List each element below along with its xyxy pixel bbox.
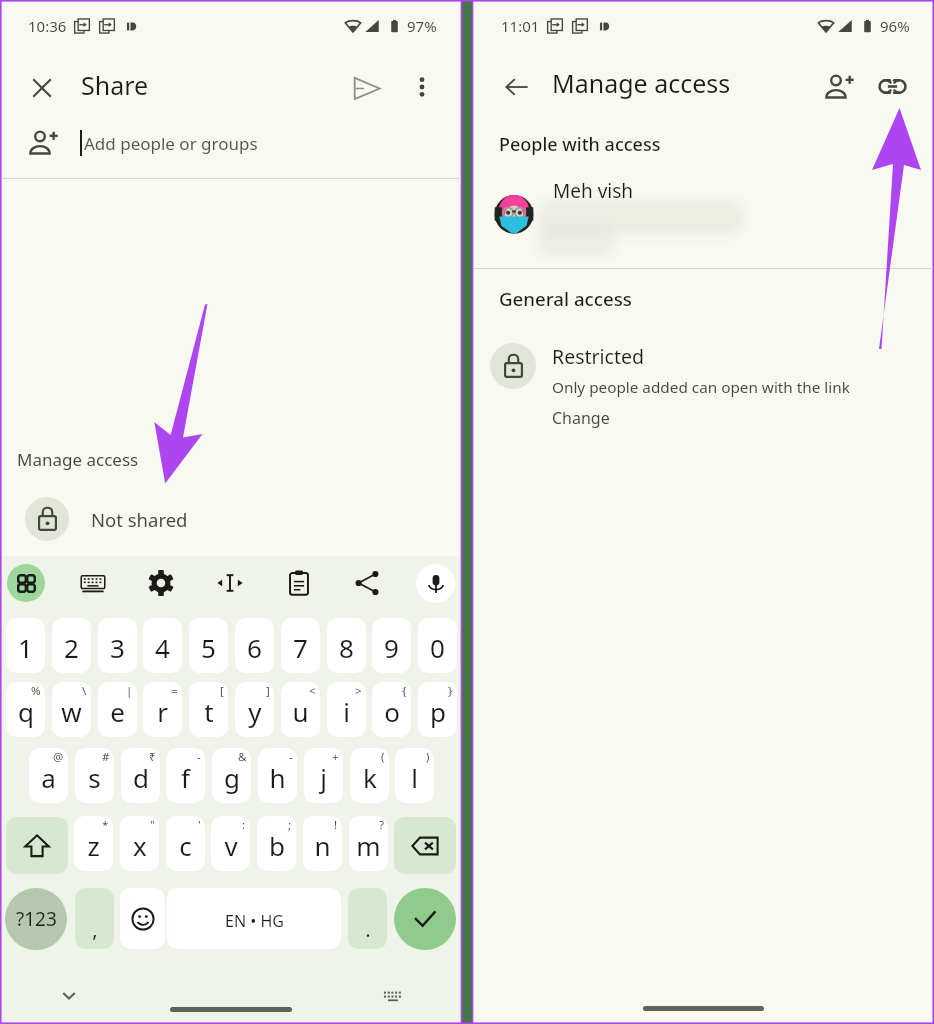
button[interactable]: 0 — [418, 618, 457, 673]
staticText: e — [110, 694, 125, 729]
staticText: o — [384, 694, 400, 729]
staticText: w — [61, 694, 82, 729]
button[interactable]: f — [166, 748, 205, 803]
button[interactable]: w — [52, 682, 91, 737]
button[interactable]: 5 — [189, 618, 228, 673]
button[interactable]: o — [372, 682, 411, 737]
staticText: p — [430, 694, 446, 729]
button[interactable]: j — [304, 748, 343, 803]
staticText: * — [102, 817, 109, 833]
button[interactable]: Text cursor — [216, 569, 244, 597]
button[interactable]: Enter — [394, 888, 456, 950]
button[interactable]: Add people or groups — [0, 115, 934, 171]
staticText: u — [292, 694, 309, 729]
button[interactable]: v — [211, 816, 250, 871]
button[interactable]: EN • HG — [167, 888, 341, 949]
staticText: @ — [53, 749, 64, 765]
button[interactable]: x — [120, 816, 159, 871]
staticText: 7 — [293, 630, 308, 665]
button[interactable]: , — [75, 888, 114, 949]
button[interactable]: 4 — [143, 618, 182, 673]
staticText: i — [343, 694, 350, 729]
button[interactable]: Restricted — [490, 343, 850, 429]
button[interactable]: p — [418, 682, 457, 737]
button[interactable]: Shift — [6, 817, 68, 874]
button[interactable]: s — [75, 748, 114, 803]
button[interactable]: Voice input — [416, 564, 455, 603]
staticText: ? — [379, 817, 384, 833]
staticText: 10:36 — [28, 16, 67, 36]
button[interactable]: Keyboard layout — [79, 569, 107, 597]
staticText: Manage access — [17, 448, 139, 471]
button[interactable]: g — [212, 748, 251, 803]
staticText: \ — [82, 683, 87, 699]
button[interactable]: y — [235, 682, 274, 737]
staticText: ; — [288, 817, 292, 833]
staticText: c — [179, 828, 192, 863]
button[interactable]: Not shared — [0, 496, 188, 542]
button[interactable]: 6 — [235, 618, 274, 673]
button[interactable]: Copy link — [879, 73, 906, 100]
button[interactable]: l — [395, 748, 434, 803]
staticText: ) — [426, 749, 430, 765]
button[interactable]: m — [349, 816, 388, 871]
button[interactable]: q — [6, 682, 45, 737]
staticText: - — [289, 749, 293, 765]
staticText: - — [197, 749, 201, 765]
button[interactable]: Settings — [147, 569, 175, 597]
button[interactable]: 1 — [6, 618, 45, 673]
staticText: 5 — [201, 630, 216, 665]
staticText: 1 — [18, 630, 33, 665]
button[interactable]: n — [303, 816, 342, 871]
staticText: 6 — [247, 630, 262, 665]
button[interactable]: d — [121, 748, 160, 803]
button[interactable]: z — [74, 816, 113, 871]
button[interactable]: Clipboard — [285, 569, 313, 597]
button[interactable]: h — [258, 748, 297, 803]
staticText: r — [157, 694, 168, 729]
button[interactable]: t — [189, 682, 228, 737]
staticText: Share — [81, 68, 149, 102]
button[interactable]: Hide keyboard — [57, 981, 81, 1005]
button[interactable]: Add people — [824, 72, 854, 102]
button[interactable]: . — [348, 888, 387, 949]
staticText: l — [411, 760, 418, 795]
staticText: . — [365, 916, 371, 943]
staticText: b — [269, 828, 285, 863]
staticText: ( — [381, 749, 385, 765]
button[interactable]: Share — [353, 569, 381, 597]
button[interactable]: 8 — [327, 618, 366, 673]
button[interactable]: r — [143, 682, 182, 737]
button[interactable]: u — [281, 682, 320, 737]
button[interactable]: ?123 — [5, 888, 67, 950]
staticText: z — [87, 828, 100, 863]
button[interactable]: Backspace — [394, 817, 456, 874]
staticText: ₹ — [149, 749, 156, 765]
button[interactable]: e — [98, 682, 137, 737]
staticText: Restricted — [552, 343, 644, 370]
button[interactable]: k — [350, 748, 389, 803]
button[interactable]: 3 — [98, 618, 137, 673]
button[interactable]: Send — [351, 73, 382, 104]
staticText: , — [92, 916, 98, 943]
staticText: [ — [220, 683, 224, 699]
button[interactable]: c — [166, 816, 205, 871]
button[interactable]: 2 — [52, 618, 91, 673]
button[interactable]: More options — [406, 71, 438, 103]
staticText: Change — [552, 407, 610, 429]
staticText: Manage access — [552, 66, 731, 100]
button[interactable]: 7 — [281, 618, 320, 673]
button[interactable]: 9 — [372, 618, 411, 673]
button[interactable]: a — [29, 748, 68, 803]
staticText: 0 — [430, 630, 445, 665]
button[interactable]: Emoji — [120, 888, 165, 949]
staticText: t — [204, 694, 214, 729]
staticText: 4 — [155, 630, 170, 665]
button[interactable]: Switch keyboard — [380, 985, 404, 1009]
button[interactable]: i — [327, 682, 366, 737]
button[interactable]: b — [257, 816, 296, 871]
button[interactable]: Back — [503, 73, 531, 101]
button[interactable]: Apps — [7, 564, 45, 602]
staticText: 97% — [407, 16, 437, 36]
button[interactable]: Close — [26, 72, 58, 104]
